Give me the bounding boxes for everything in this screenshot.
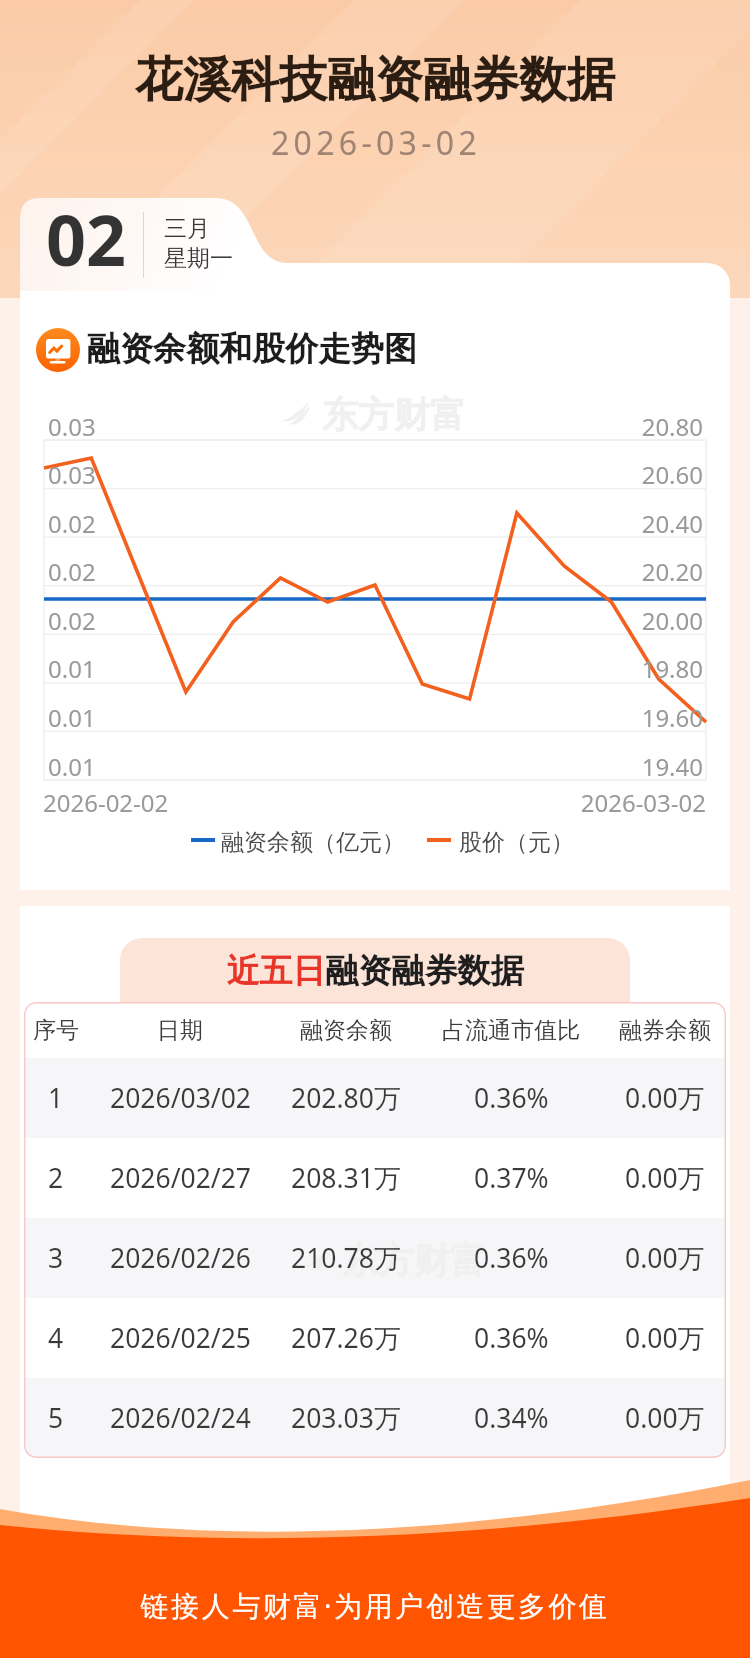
staticText: 近五日融资融券数据 bbox=[20, 950, 730, 992]
staticText: 2 bbox=[48, 1160, 64, 1196]
staticText: 0.01 bbox=[48, 652, 96, 685]
other: Chart bbox=[36, 328, 80, 372]
staticText: 20.20 bbox=[0, 555, 703, 588]
staticText: 207.26万 bbox=[291, 1320, 401, 1356]
staticText: 0.00万 bbox=[625, 1240, 705, 1276]
staticText: 4 bbox=[48, 1320, 64, 1356]
staticText: 0.02 bbox=[48, 604, 96, 637]
staticText: 0.00万 bbox=[625, 1160, 705, 1196]
staticText: 2026/02/24 bbox=[110, 1400, 251, 1436]
staticText: 0.00万 bbox=[625, 1400, 705, 1436]
staticText: 股价（元） bbox=[459, 828, 574, 857]
staticText: 0.37% bbox=[474, 1160, 549, 1196]
staticText: 0.02 bbox=[48, 555, 96, 588]
staticText: 占流通市值比 bbox=[442, 1016, 580, 1045]
staticText: 208.31万 bbox=[291, 1160, 401, 1196]
staticText: 三月 bbox=[164, 214, 210, 243]
staticText: 203.03万 bbox=[291, 1400, 401, 1436]
staticText: 19.60 bbox=[0, 701, 703, 734]
staticText: 0.01 bbox=[48, 750, 96, 783]
staticText: 0.01 bbox=[48, 701, 96, 734]
staticText: 0.36% bbox=[474, 1240, 549, 1276]
staticText: 日期 bbox=[157, 1016, 203, 1045]
staticText: 19.80 bbox=[0, 652, 703, 685]
staticText: 0.36% bbox=[474, 1080, 549, 1116]
staticText: 0.03 bbox=[48, 410, 96, 443]
staticText: 融资余额和股价走势图 bbox=[87, 328, 417, 370]
staticText: 2026-03-02 bbox=[0, 786, 706, 819]
staticText: 2026/03/02 bbox=[110, 1080, 251, 1116]
staticText: 融资余额 bbox=[300, 1016, 392, 1045]
staticText: 链接人与财富·为用户创造更多价值 bbox=[0, 1586, 750, 1624]
staticText: 3 bbox=[48, 1240, 64, 1276]
staticText: 0.02 bbox=[48, 507, 96, 540]
staticText: 0.34% bbox=[474, 1400, 549, 1436]
staticText: 0.00万 bbox=[625, 1320, 705, 1356]
staticText: 02 bbox=[46, 191, 127, 286]
staticText: 2026/02/26 bbox=[110, 1240, 251, 1276]
staticText: 20.40 bbox=[0, 507, 703, 540]
staticText: 210.78万 bbox=[291, 1240, 401, 1276]
staticText: 2026-02-02 bbox=[43, 786, 169, 819]
staticText: 0.36% bbox=[474, 1320, 549, 1356]
staticText: 花溪科技融资融券数据 bbox=[0, 50, 750, 110]
staticText: 序号 bbox=[33, 1016, 79, 1045]
staticText: 东方财富 bbox=[322, 392, 466, 432]
staticText: 1 bbox=[48, 1080, 64, 1116]
staticText: 2026-03-02 bbox=[1, 121, 750, 165]
staticText: 0.00万 bbox=[625, 1080, 705, 1116]
staticText: 20.60 bbox=[0, 458, 703, 491]
staticText: 2026/02/25 bbox=[110, 1320, 251, 1356]
staticText: 2026/02/27 bbox=[110, 1160, 251, 1196]
staticText: 5 bbox=[48, 1400, 64, 1436]
staticText: 星期一 bbox=[164, 244, 233, 273]
staticText: 20.80 bbox=[0, 410, 703, 443]
staticText: 0.03 bbox=[48, 458, 96, 491]
staticText: 东方财富 bbox=[342, 1238, 486, 1278]
staticText: 融券余额 bbox=[619, 1016, 711, 1045]
staticText: 20.00 bbox=[0, 604, 703, 637]
staticText: 19.40 bbox=[0, 750, 703, 783]
staticText: 202.80万 bbox=[291, 1080, 401, 1116]
staticText: 融资余额（亿元） bbox=[221, 828, 405, 857]
